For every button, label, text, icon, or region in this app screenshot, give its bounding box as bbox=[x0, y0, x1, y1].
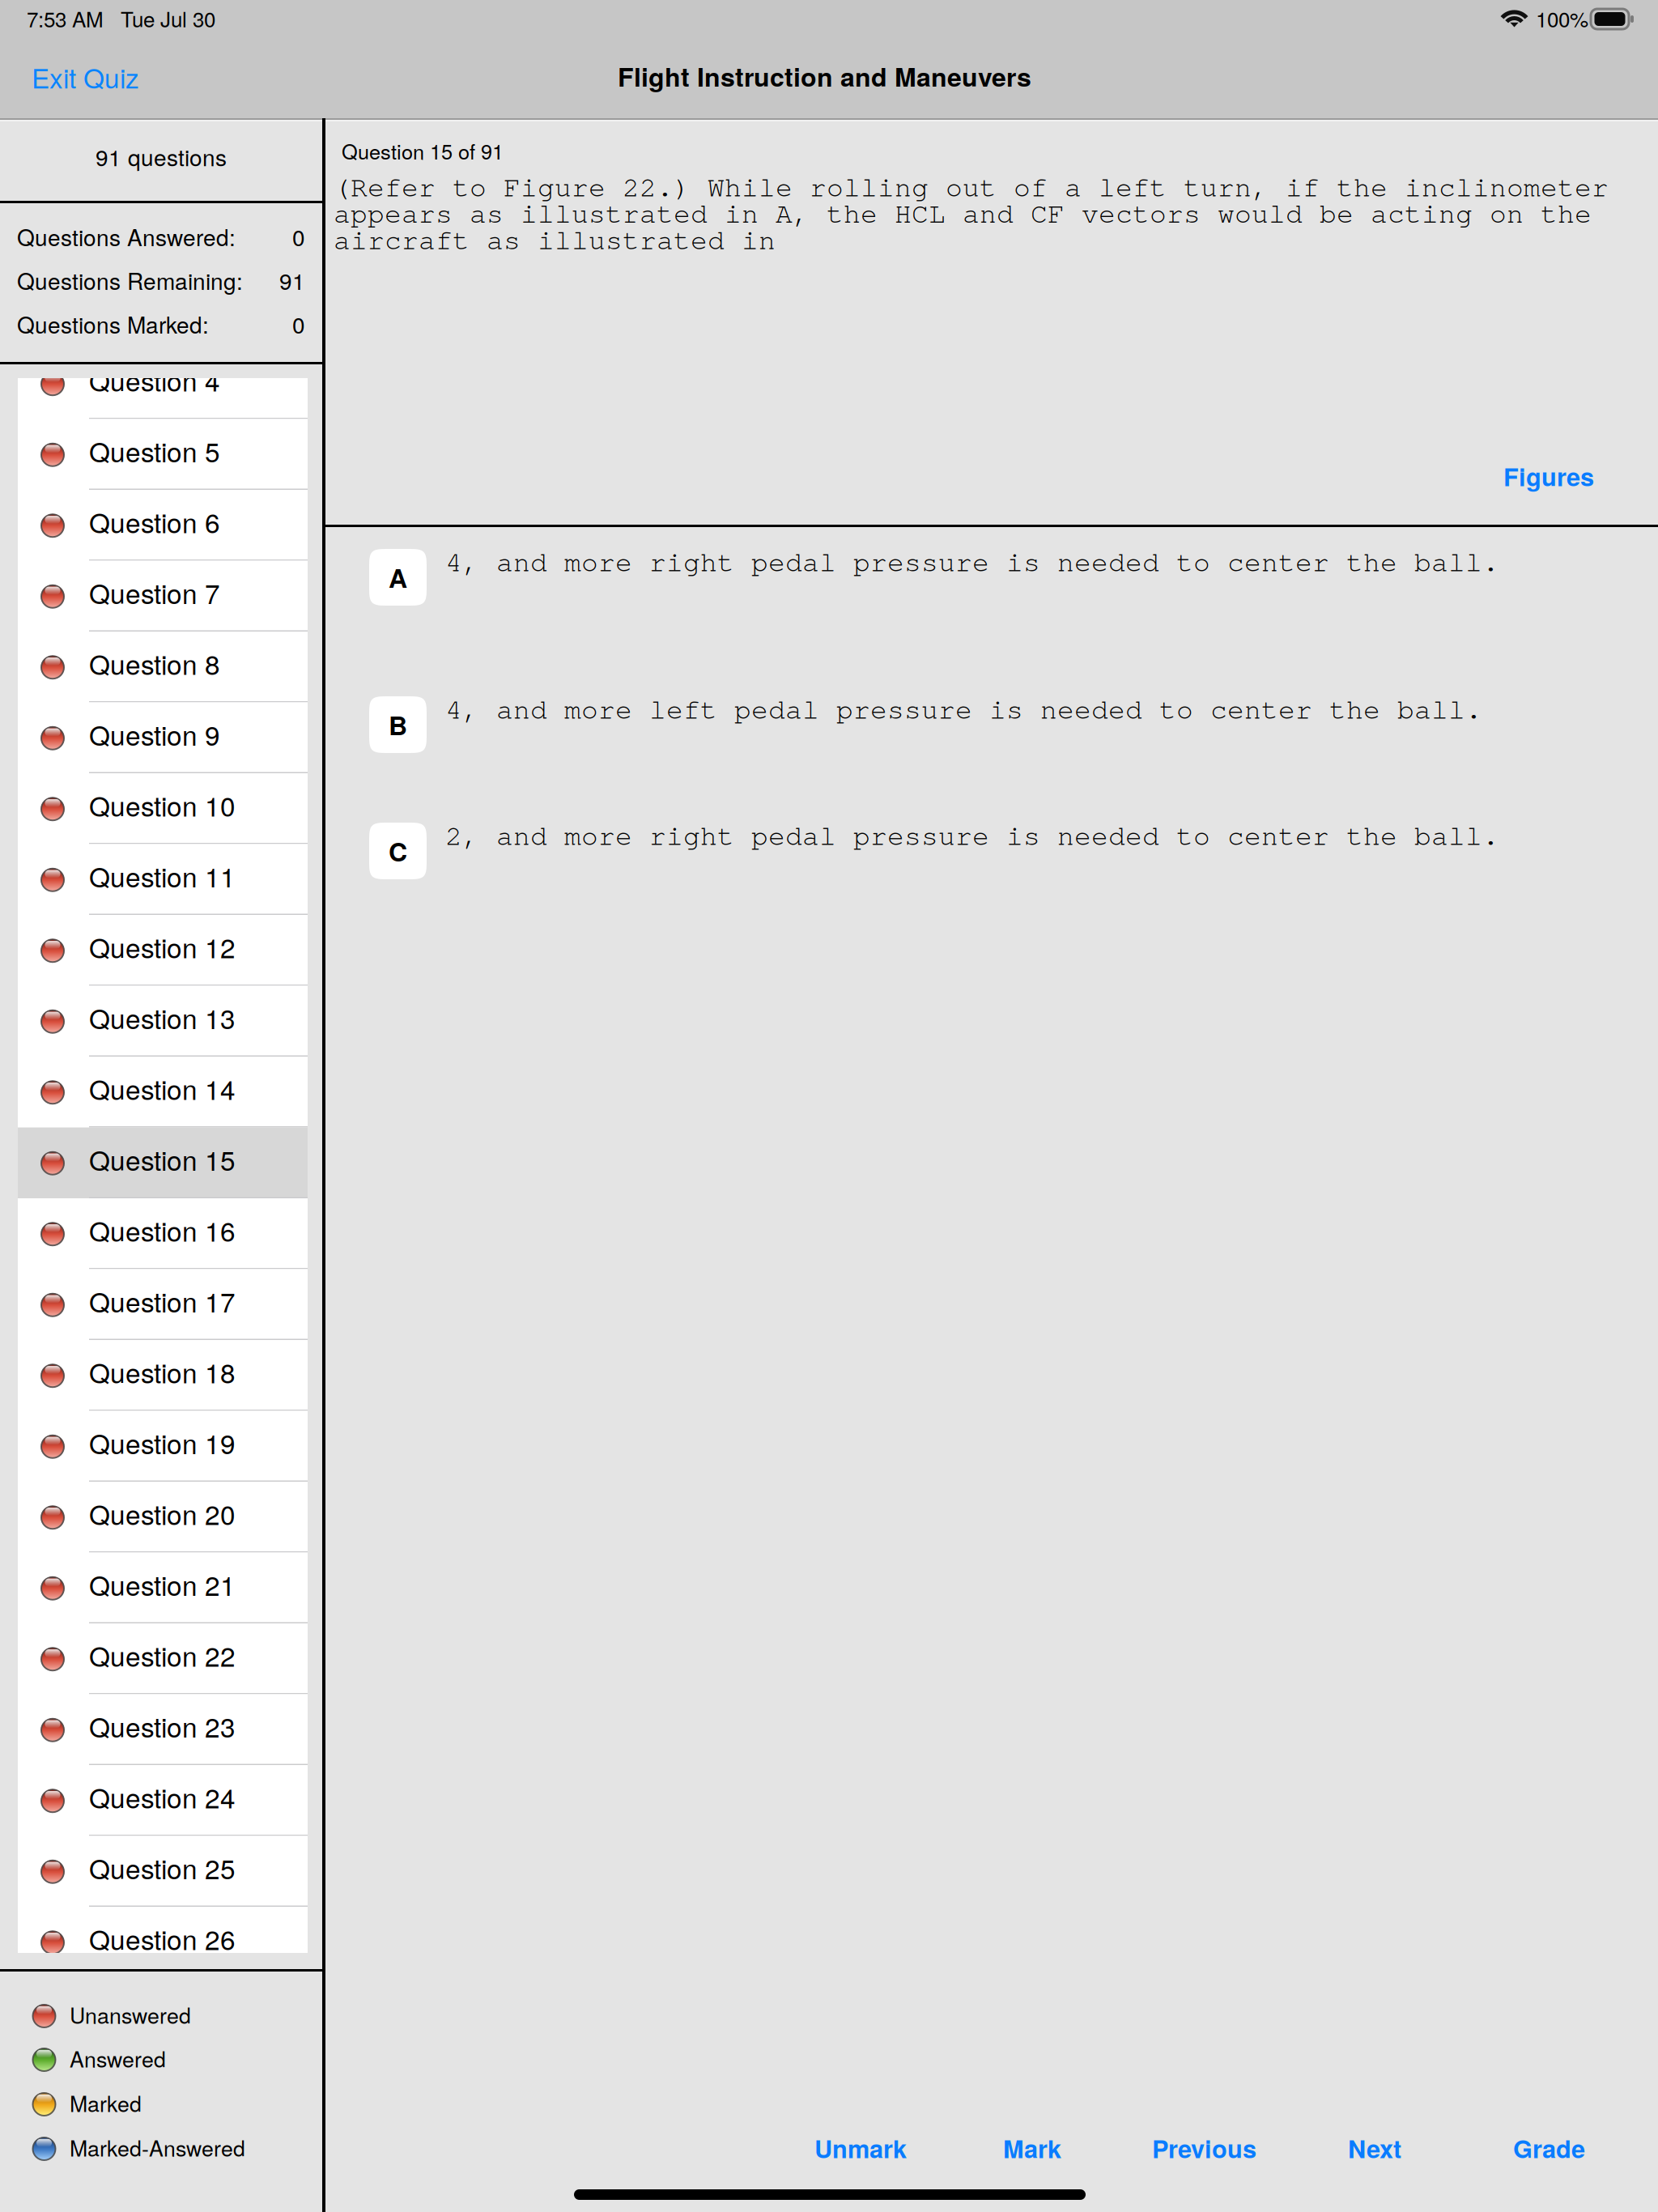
staticText: Question 7 bbox=[89, 573, 220, 612]
button[interactable]: Question 7 bbox=[18, 561, 308, 632]
button[interactable]: Question 8 bbox=[18, 632, 308, 702]
button[interactable]: Question 17 bbox=[18, 1269, 308, 1340]
staticText: Next bbox=[1348, 2130, 1401, 2166]
staticText: B bbox=[389, 706, 407, 743]
button[interactable]: Question 23 bbox=[18, 1694, 308, 1765]
staticText: 7:53 AM Tue Jul 30 bbox=[27, 3, 215, 33]
button[interactable]: Question 15 bbox=[18, 1127, 308, 1198]
staticText: Question 29 bbox=[89, 2132, 236, 2170]
button[interactable]: Question 10 bbox=[18, 773, 308, 844]
button[interactable]: Question 13 bbox=[18, 986, 308, 1057]
staticText: Question 22 bbox=[89, 1636, 236, 1674]
staticText: Previous bbox=[1152, 2130, 1256, 2166]
button[interactable]: Question 4 bbox=[18, 348, 308, 419]
button[interactable]: Question 20 bbox=[18, 1482, 308, 1553]
staticText: Question 23 bbox=[89, 1707, 236, 1745]
staticText: 91 bbox=[279, 264, 305, 296]
button[interactable]: Question 14 bbox=[18, 1057, 308, 1127]
button[interactable]: A bbox=[325, 549, 1658, 678]
staticText: Grade bbox=[1513, 2130, 1585, 2166]
staticText: 4, and more left pedal pressure is neede… bbox=[445, 696, 1482, 722]
staticText: Mark bbox=[1003, 2130, 1061, 2166]
button[interactable]: Question 26 bbox=[18, 1907, 308, 1978]
staticText: Question 16 bbox=[89, 1211, 236, 1249]
staticText: Question 17 bbox=[89, 1282, 236, 1320]
button[interactable]: Mark bbox=[979, 2111, 1086, 2185]
staticText: Question 6 bbox=[89, 502, 220, 541]
staticText: Question 24 bbox=[89, 1777, 236, 1816]
staticText: Question 15 bbox=[89, 1140, 236, 1178]
staticText: 4, and more right pedal pressure is need… bbox=[445, 548, 1499, 575]
button[interactable]: Question 16 bbox=[18, 1198, 308, 1269]
staticText: Marked bbox=[70, 2087, 142, 2118]
button[interactable]: Question 24 bbox=[18, 1765, 308, 1836]
button[interactable]: Question 18 bbox=[18, 1340, 308, 1411]
button[interactable]: Question 5 bbox=[18, 419, 308, 490]
staticText: Questions Marked: bbox=[17, 308, 209, 340]
staticText: Question 21 bbox=[89, 1565, 236, 1604]
staticText: Questions Answered: bbox=[17, 220, 236, 253]
button[interactable]: Question 11 bbox=[18, 844, 308, 915]
staticText: Marked-Answered bbox=[70, 2132, 245, 2163]
button[interactable]: Question 9 bbox=[18, 702, 308, 773]
button[interactable]: C bbox=[325, 823, 1658, 952]
staticText: Flight Instruction and Maneuvers bbox=[618, 57, 1031, 95]
staticText: 0 bbox=[292, 308, 305, 340]
staticText: Question 18 bbox=[89, 1352, 236, 1391]
staticText: Question 13 bbox=[89, 998, 236, 1037]
button[interactable]: Question 27 bbox=[18, 1978, 308, 2048]
button[interactable]: Question 6 bbox=[18, 490, 308, 561]
staticText: Answered bbox=[70, 2043, 166, 2074]
button[interactable]: Question 28 bbox=[18, 2048, 308, 2119]
staticText: 0 bbox=[292, 220, 305, 253]
staticText: Questions Remaining: bbox=[17, 264, 243, 296]
staticText: 2, and more right pedal pressure is need… bbox=[445, 822, 1499, 848]
staticText: Unmark bbox=[814, 2130, 907, 2166]
staticText: 91 questions bbox=[96, 140, 227, 173]
staticText: Question 15 of 91 bbox=[342, 136, 504, 165]
button[interactable]: B bbox=[325, 696, 1658, 826]
staticText: Question 19 bbox=[89, 1423, 236, 1462]
button[interactable]: Grade bbox=[1489, 2111, 1609, 2185]
staticText: A bbox=[389, 559, 407, 596]
button[interactable]: Question 19 bbox=[18, 1411, 308, 1482]
staticText: Question 28 bbox=[89, 2061, 236, 2099]
staticText: Question 5 bbox=[89, 431, 220, 470]
button[interactable]: Figures bbox=[1492, 449, 1605, 504]
button[interactable]: Question 29 bbox=[18, 2119, 308, 2190]
staticText: Question 12 bbox=[89, 927, 236, 966]
staticText: Question 14 bbox=[89, 1069, 236, 1108]
button[interactable]: Previous bbox=[1128, 2111, 1281, 2185]
staticText: Question 4 bbox=[89, 360, 220, 399]
button[interactable]: Next bbox=[1324, 2111, 1426, 2185]
staticText: Question 8 bbox=[89, 644, 220, 682]
staticText: Figures bbox=[1503, 458, 1594, 494]
button[interactable]: Question 22 bbox=[18, 1623, 308, 1694]
staticText: Question 20 bbox=[89, 1494, 236, 1533]
staticText: (Refer to Figure 22.) While rolling out … bbox=[334, 173, 1609, 253]
staticText: Question 27 bbox=[89, 1990, 236, 2029]
button[interactable]: Exit Quiz bbox=[22, 46, 149, 107]
button[interactable]: Question 12 bbox=[18, 915, 308, 986]
staticText: Unanswered bbox=[70, 1999, 191, 2030]
staticText: C bbox=[389, 832, 407, 869]
staticText: Exit Quiz bbox=[32, 57, 139, 96]
staticText: Question 10 bbox=[89, 786, 236, 824]
button[interactable]: Unmark bbox=[790, 2111, 931, 2185]
staticText: Question 9 bbox=[89, 715, 220, 753]
button[interactable]: Question 21 bbox=[18, 1553, 308, 1623]
staticText: Question 26 bbox=[89, 1919, 236, 1958]
staticText: Question 25 bbox=[89, 1848, 236, 1887]
staticText: 100% bbox=[1536, 3, 1588, 33]
staticText: Question 11 bbox=[89, 856, 236, 895]
button[interactable]: Question 25 bbox=[18, 1836, 308, 1907]
